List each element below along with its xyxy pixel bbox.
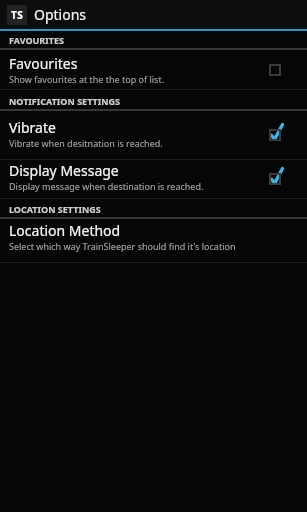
staticText: LOCATION SETTINGS bbox=[9, 203, 101, 215]
staticText: Vibrate when desitnation is reached. bbox=[9, 137, 163, 149]
staticText: Display message when destination is reac… bbox=[9, 180, 204, 192]
staticText: Display Message bbox=[9, 161, 119, 180]
staticText: Show favourites at the the top of list. bbox=[9, 73, 165, 85]
staticText: TS bbox=[11, 8, 24, 22]
button[interactable]: Display Message bbox=[0, 160, 307, 198]
staticText: Location Method bbox=[9, 221, 121, 240]
staticText: NOTIFICATION SETTINGS bbox=[9, 95, 121, 107]
staticText: Options bbox=[34, 5, 87, 24]
button[interactable]: Favourites bbox=[0, 50, 307, 89]
button[interactable]: Location Method bbox=[0, 219, 307, 262]
staticText: Vibrate bbox=[9, 118, 56, 137]
staticText: FAVOURITES bbox=[9, 34, 64, 46]
staticText: Select which way TrainSleeper should fin… bbox=[9, 240, 236, 252]
button[interactable]: Vibrate bbox=[0, 111, 307, 159]
staticText: Favourites bbox=[9, 54, 78, 73]
